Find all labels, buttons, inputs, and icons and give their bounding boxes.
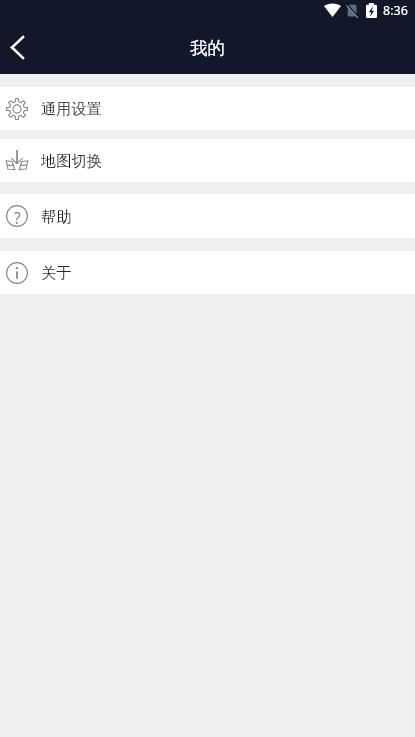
staticText: 通用设置	[41, 99, 102, 118]
staticText: 帮助	[41, 207, 72, 226]
staticText: ?	[14, 207, 21, 228]
button[interactable]: Back	[0, 21, 44, 74]
staticText: 关于	[41, 263, 72, 282]
button[interactable]: 地图切换	[0, 139, 415, 182]
button[interactable]: 通用设置	[0, 87, 415, 130]
staticText: 地图切换	[41, 151, 102, 170]
button[interactable]: 关于	[0, 251, 415, 294]
staticText: 我的	[190, 37, 225, 59]
button[interactable]: ?	[0, 194, 415, 238]
staticText: 8:36	[383, 2, 408, 19]
